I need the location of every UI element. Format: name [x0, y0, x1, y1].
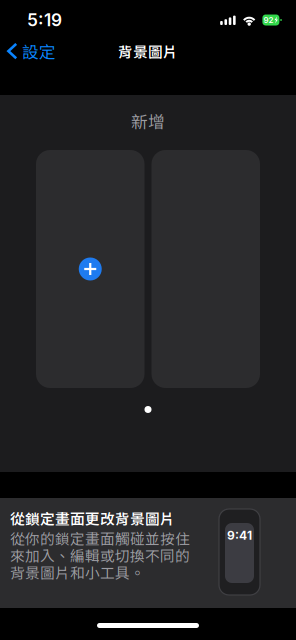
staticText: 背景圖片: [118, 40, 178, 62]
button[interactable]: 設定: [0, 40, 64, 62]
staticText: 5:19: [27, 9, 62, 30]
staticText: 設定: [22, 39, 56, 63]
staticText: 9:41: [227, 528, 252, 542]
staticText: 新增: [131, 109, 165, 133]
staticText: 從你的鎖定畫面觸碰並按住: [10, 527, 190, 549]
button[interactable]: 加入新的背景圖片: [36, 150, 144, 388]
staticText: 從鎖定畫面更改背景圖片: [10, 507, 175, 529]
staticText: 92: [263, 15, 273, 25]
staticText: 來加入、編輯或切換不同的: [10, 544, 190, 566]
staticText: 背景圖片和小工具。: [10, 561, 145, 583]
